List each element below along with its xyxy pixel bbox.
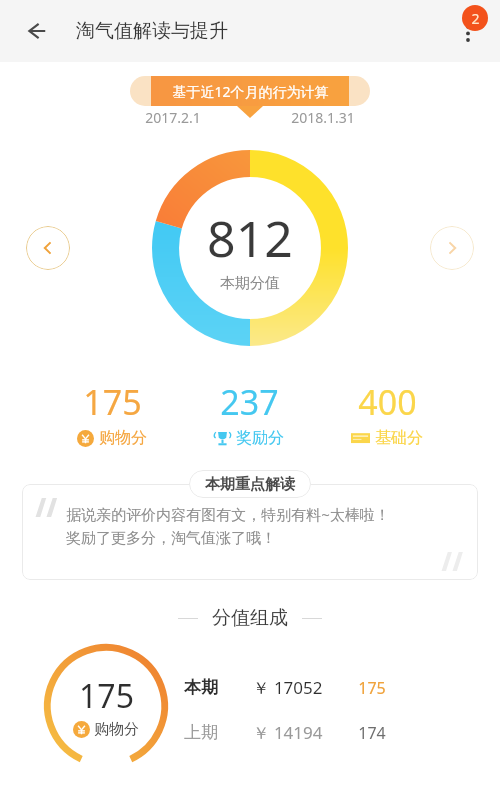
- staticText: 400: [358, 379, 417, 425]
- button[interactable]: 175: [71, 379, 153, 448]
- staticText: 奖励了更多分，淘气值涨了哦！: [66, 529, 276, 548]
- button[interactable]: 237: [208, 379, 290, 448]
- staticText: 175: [79, 674, 134, 718]
- staticText: 本期: [184, 677, 218, 698]
- staticText: 淘气值解读与提升: [76, 19, 228, 43]
- staticText: 812: [207, 204, 293, 272]
- staticText: 2018.1.31: [291, 108, 355, 127]
- staticText: 175: [358, 677, 386, 699]
- staticText: 购物分: [94, 720, 139, 739]
- staticText: 174: [358, 722, 386, 744]
- staticText: 175: [83, 379, 142, 425]
- staticText: 本期重点解读: [205, 475, 295, 494]
- staticText: 基于近12个月的行为计算: [172, 82, 329, 101]
- button[interactable]: Back: [14, 9, 58, 53]
- staticText: ￥ 17052: [252, 676, 323, 699]
- staticText: 237: [220, 379, 279, 425]
- staticText: ￥ 14194: [252, 721, 323, 744]
- staticText: 上期: [184, 722, 218, 743]
- staticText: 据说亲的评价内容有图有文，特别有料~太棒啦！: [66, 504, 390, 524]
- button[interactable]: 400: [345, 379, 429, 448]
- staticText: 2: [471, 9, 480, 28]
- staticText: 奖励分: [236, 428, 284, 448]
- staticText: 2017.2.1: [145, 108, 201, 127]
- staticText: 本期分值: [220, 274, 280, 293]
- button[interactable]: Previous: [26, 226, 70, 270]
- button[interactable]: Next: [430, 226, 474, 270]
- staticText: 基础分: [375, 428, 423, 448]
- staticText: 购物分: [99, 428, 147, 448]
- button[interactable]: More options: [444, 7, 492, 55]
- staticText: 分值组成: [212, 606, 288, 630]
